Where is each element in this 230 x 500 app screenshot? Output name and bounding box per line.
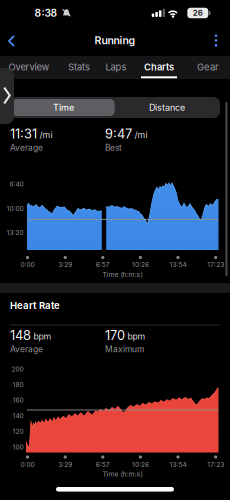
button[interactable]: Charts (144, 61, 174, 73)
staticText: bpm (33, 331, 51, 342)
staticText: 11:31 (10, 126, 37, 142)
button[interactable]: Overview (8, 61, 49, 73)
staticText: 17:23 (207, 260, 224, 268)
staticText: 100 (12, 443, 23, 451)
button[interactable]: More options (209, 33, 223, 48)
staticText: 26 (193, 8, 203, 18)
staticText: Charts (144, 61, 174, 73)
staticText: 180 (12, 381, 23, 389)
staticText: 8:38 (34, 7, 57, 19)
staticText: Average (10, 143, 43, 153)
staticText: Gear (197, 61, 219, 73)
staticText: Maximum (105, 344, 144, 354)
staticText: 9:47 (105, 126, 132, 142)
button[interactable]: Open laps panel (0, 68, 14, 124)
staticText: Time (h:m:s) (102, 470, 142, 478)
staticText: Best (105, 143, 122, 153)
button[interactable]: Gear (197, 61, 219, 73)
staticText: 3:29 (58, 460, 72, 468)
staticText: /mi (134, 130, 147, 140)
staticText: 140 (12, 412, 23, 420)
staticText: bpm (127, 331, 145, 342)
staticText: 148 (10, 328, 31, 343)
staticText: 200 (11, 365, 23, 373)
staticText: 6:57 (96, 260, 110, 268)
button[interactable]: Back (4, 33, 18, 48)
staticText: Average (10, 344, 43, 354)
staticText: 17:23 (207, 460, 224, 468)
staticText: 13:54 (169, 260, 186, 268)
staticText: 170 (105, 328, 125, 343)
staticText: Time (h:m:s) (102, 270, 142, 279)
button[interactable]: Laps (105, 61, 126, 73)
staticText: 6:57 (96, 460, 110, 468)
button[interactable]: Stats (68, 61, 90, 73)
staticText: Time (53, 102, 74, 113)
button[interactable]: Distance (116, 99, 218, 116)
staticText: /mi (39, 130, 52, 140)
staticText: 10:26 (132, 460, 149, 468)
staticText: Laps (105, 61, 126, 73)
staticText: 10:26 (132, 260, 149, 268)
staticText: Overview (8, 61, 49, 73)
staticText: Heart Rate (10, 300, 60, 311)
staticText: 3:29 (58, 260, 72, 268)
staticText: 160 (12, 396, 23, 404)
staticText: Distance (149, 102, 185, 113)
staticText: 120 (12, 427, 23, 435)
staticText: 13:54 (169, 460, 186, 468)
staticText: 6:40 (9, 180, 23, 188)
staticText: Stats (68, 61, 90, 73)
staticText: 10:00 (6, 204, 23, 212)
button[interactable]: Time (12, 99, 115, 116)
staticText: 0:00 (20, 260, 34, 268)
staticText: 0:00 (20, 460, 34, 468)
staticText: Running (94, 34, 135, 47)
staticText: 13:20 (6, 228, 23, 236)
